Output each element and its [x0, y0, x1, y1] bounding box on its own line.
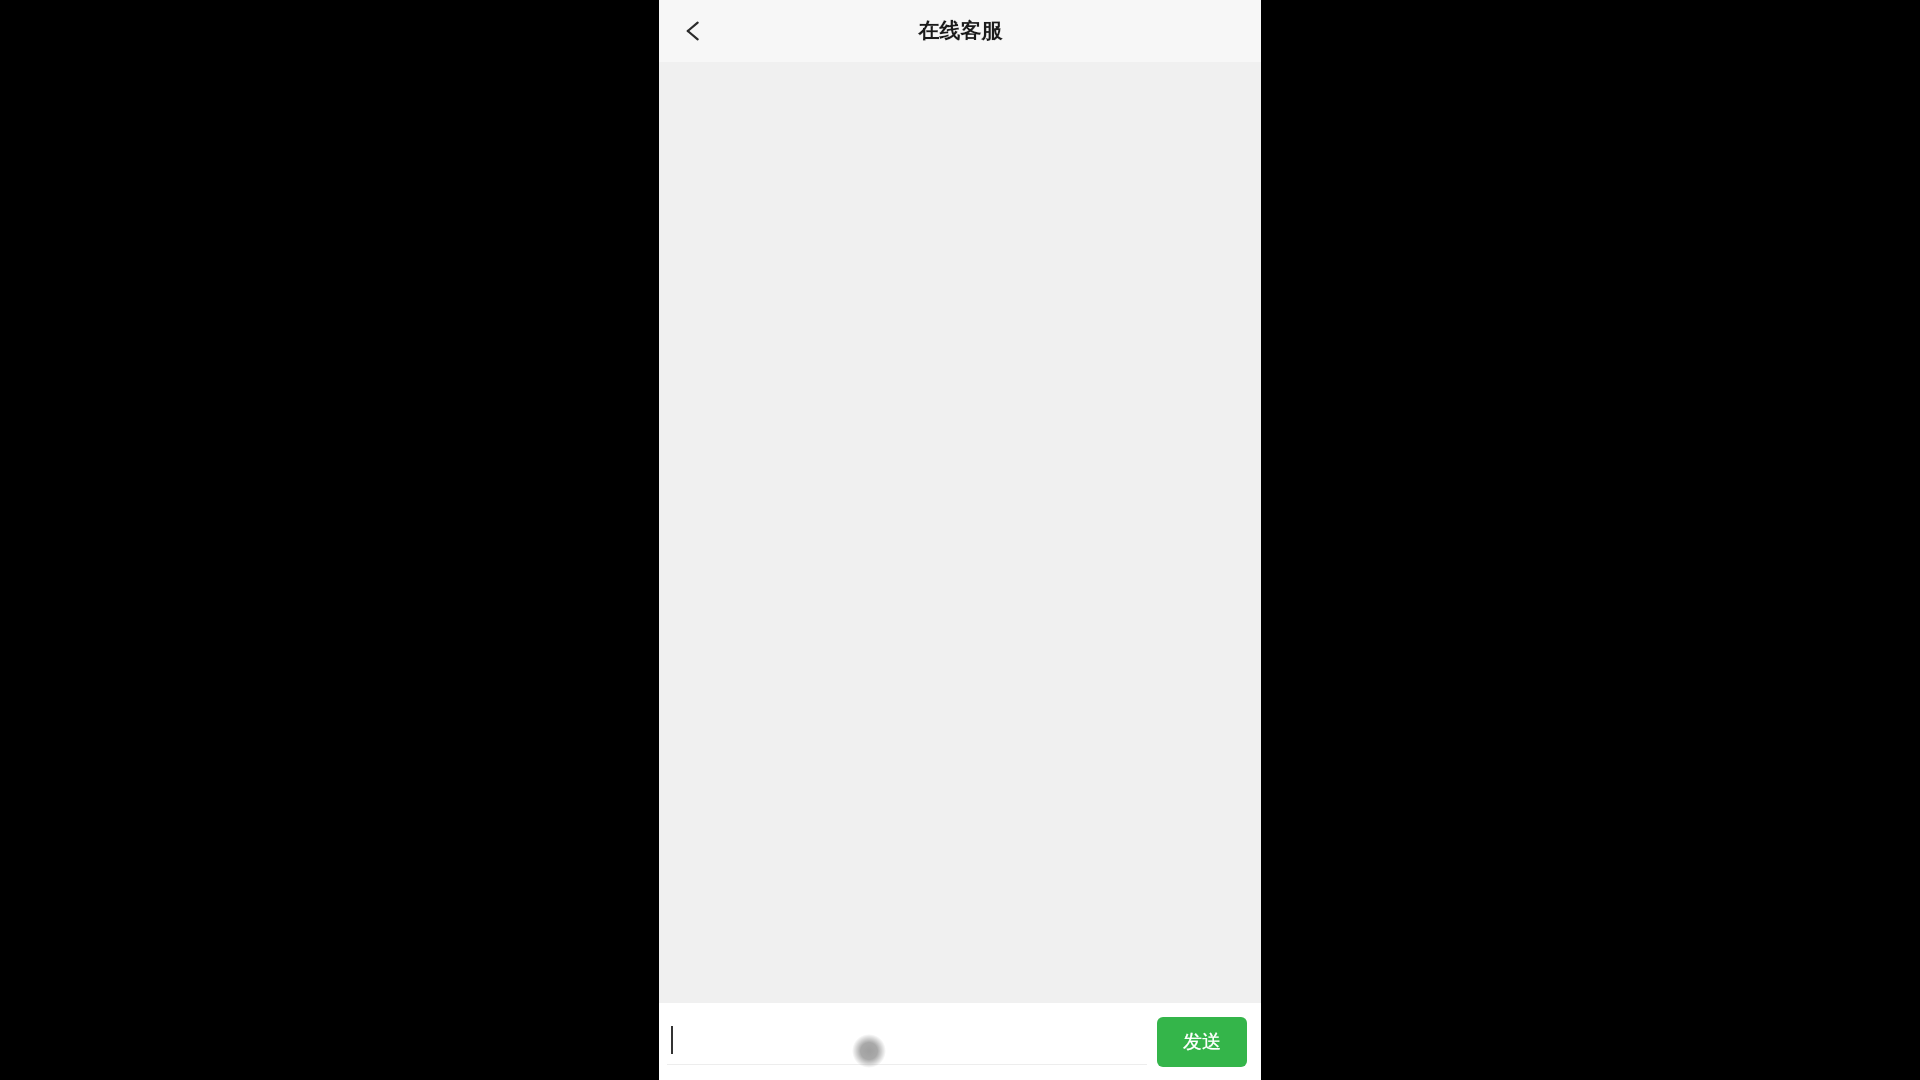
button[interactable] — [667, 1011, 1147, 1073]
staticText: 在线客服 — [918, 18, 1002, 44]
staticText: 发送 — [1183, 1030, 1221, 1054]
button[interactable]: 发送 — [1157, 1017, 1247, 1067]
button[interactable]: Back — [665, 3, 721, 59]
